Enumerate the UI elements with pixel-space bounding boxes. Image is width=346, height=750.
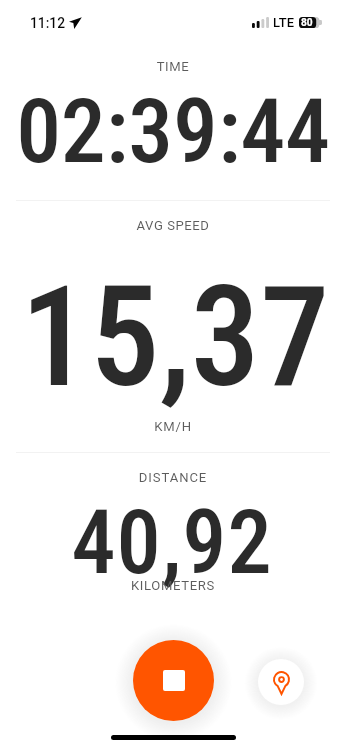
staticText: LTE bbox=[273, 15, 294, 30]
staticText: KM/H bbox=[0, 419, 346, 434]
staticText: DISTANCE bbox=[0, 470, 346, 485]
staticText: KILOMETERS bbox=[0, 578, 346, 593]
staticText: 40,92 bbox=[0, 491, 345, 594]
staticText: 80 bbox=[301, 17, 313, 28]
staticText: AVG SPEED bbox=[0, 218, 346, 233]
staticText: 02:39:44 bbox=[0, 79, 346, 184]
staticText: 15,37 bbox=[2, 256, 346, 419]
staticText: 11:12 bbox=[30, 15, 66, 31]
staticText: TIME bbox=[0, 59, 346, 74]
button[interactable]: Stop bbox=[133, 640, 214, 721]
button[interactable]: Map bbox=[258, 659, 304, 705]
